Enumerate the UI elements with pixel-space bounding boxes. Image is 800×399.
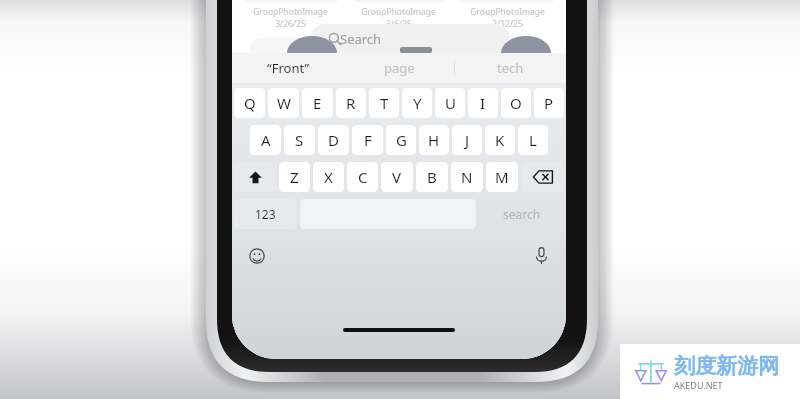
button[interactable]: [349, 0, 450, 2]
staticText: J: [465, 130, 470, 150]
staticText: GroupPhotoImage: [361, 6, 436, 18]
staticText: 3/6/25: [386, 18, 412, 30]
staticText: GroupPhotoImage: [253, 6, 328, 18]
button[interactable]: Z: [279, 162, 310, 192]
button[interactable]: A: [250, 125, 281, 155]
button[interactable]: K: [485, 125, 515, 155]
button[interactable]: C: [347, 162, 378, 192]
button[interactable]: [457, 0, 558, 2]
button[interactable]: G: [386, 125, 416, 155]
staticText: R: [346, 93, 356, 113]
staticText: S: [295, 130, 304, 150]
staticText: A: [261, 130, 271, 150]
button[interactable]: J: [452, 125, 482, 155]
staticText: E: [313, 93, 322, 113]
staticText: K: [495, 130, 505, 150]
button[interactable]: V: [381, 162, 413, 192]
button[interactable]: “Front”: [232, 53, 344, 83]
button[interactable]: I: [468, 88, 498, 118]
button[interactable]: L: [518, 125, 548, 155]
button[interactable]: S: [284, 125, 315, 155]
button[interactable]: page: [344, 53, 455, 83]
staticText: 2/12/25: [492, 18, 523, 30]
staticText: search: [503, 206, 541, 222]
staticText: H: [428, 130, 440, 150]
button[interactable]: R: [336, 88, 366, 118]
staticText: 123: [255, 206, 276, 222]
staticText: 刻度新游网: [674, 353, 779, 379]
staticText: V: [392, 167, 402, 187]
staticText: D: [328, 130, 339, 150]
staticText: X: [324, 167, 333, 187]
button[interactable]: Q: [234, 88, 265, 118]
button[interactable]: F: [352, 125, 383, 155]
button[interactable]: X: [313, 162, 344, 192]
staticText: O: [510, 93, 522, 113]
button[interactable]: [240, 0, 342, 2]
staticText: W: [277, 93, 291, 113]
staticText: T: [380, 93, 389, 113]
staticText: U: [445, 93, 456, 113]
staticText: F: [364, 130, 372, 150]
staticText: I: [480, 93, 486, 113]
button[interactable]: Emoji: [246, 245, 268, 267]
staticText: M: [495, 167, 509, 187]
staticText: L: [529, 130, 537, 150]
button[interactable]: Dictation: [530, 245, 552, 267]
button[interactable]: W: [268, 88, 299, 118]
button[interactable]: search: [479, 199, 564, 229]
button[interactable]: Y: [402, 88, 432, 118]
button[interactable]: T: [369, 88, 399, 118]
button[interactable]: N: [451, 162, 483, 192]
staticText: Y: [413, 93, 422, 113]
button[interactable]: M: [486, 162, 518, 192]
button[interactable]: E: [302, 88, 333, 118]
staticText: Search: [340, 30, 382, 48]
staticText: “Front”: [267, 59, 310, 77]
staticText: N: [461, 167, 473, 187]
staticText: tech: [497, 59, 524, 77]
staticText: B: [427, 167, 437, 187]
button[interactable]: Backspace: [521, 162, 564, 192]
staticText: GroupPhotoImage: [470, 6, 545, 18]
button[interactable]: B: [416, 162, 448, 192]
staticText: Q: [244, 93, 256, 113]
staticText: P: [544, 93, 554, 113]
button[interactable]: O: [501, 88, 531, 118]
button[interactable]: U: [435, 88, 465, 118]
button[interactable]: H: [419, 125, 449, 155]
button[interactable]: P: [534, 88, 564, 118]
staticText: 3/26/25: [275, 18, 306, 30]
staticText: Z: [290, 167, 299, 187]
button[interactable]: D: [318, 125, 349, 155]
staticText: G: [396, 130, 407, 150]
button[interactable]: Shift: [234, 162, 276, 192]
button[interactable]: 123: [234, 199, 297, 229]
button[interactable]: tech: [455, 53, 566, 83]
staticText: C: [358, 167, 368, 187]
staticText: AKEDU.NET: [674, 379, 723, 391]
button[interactable]: Search: [310, 24, 510, 54]
staticText: page: [384, 59, 415, 77]
